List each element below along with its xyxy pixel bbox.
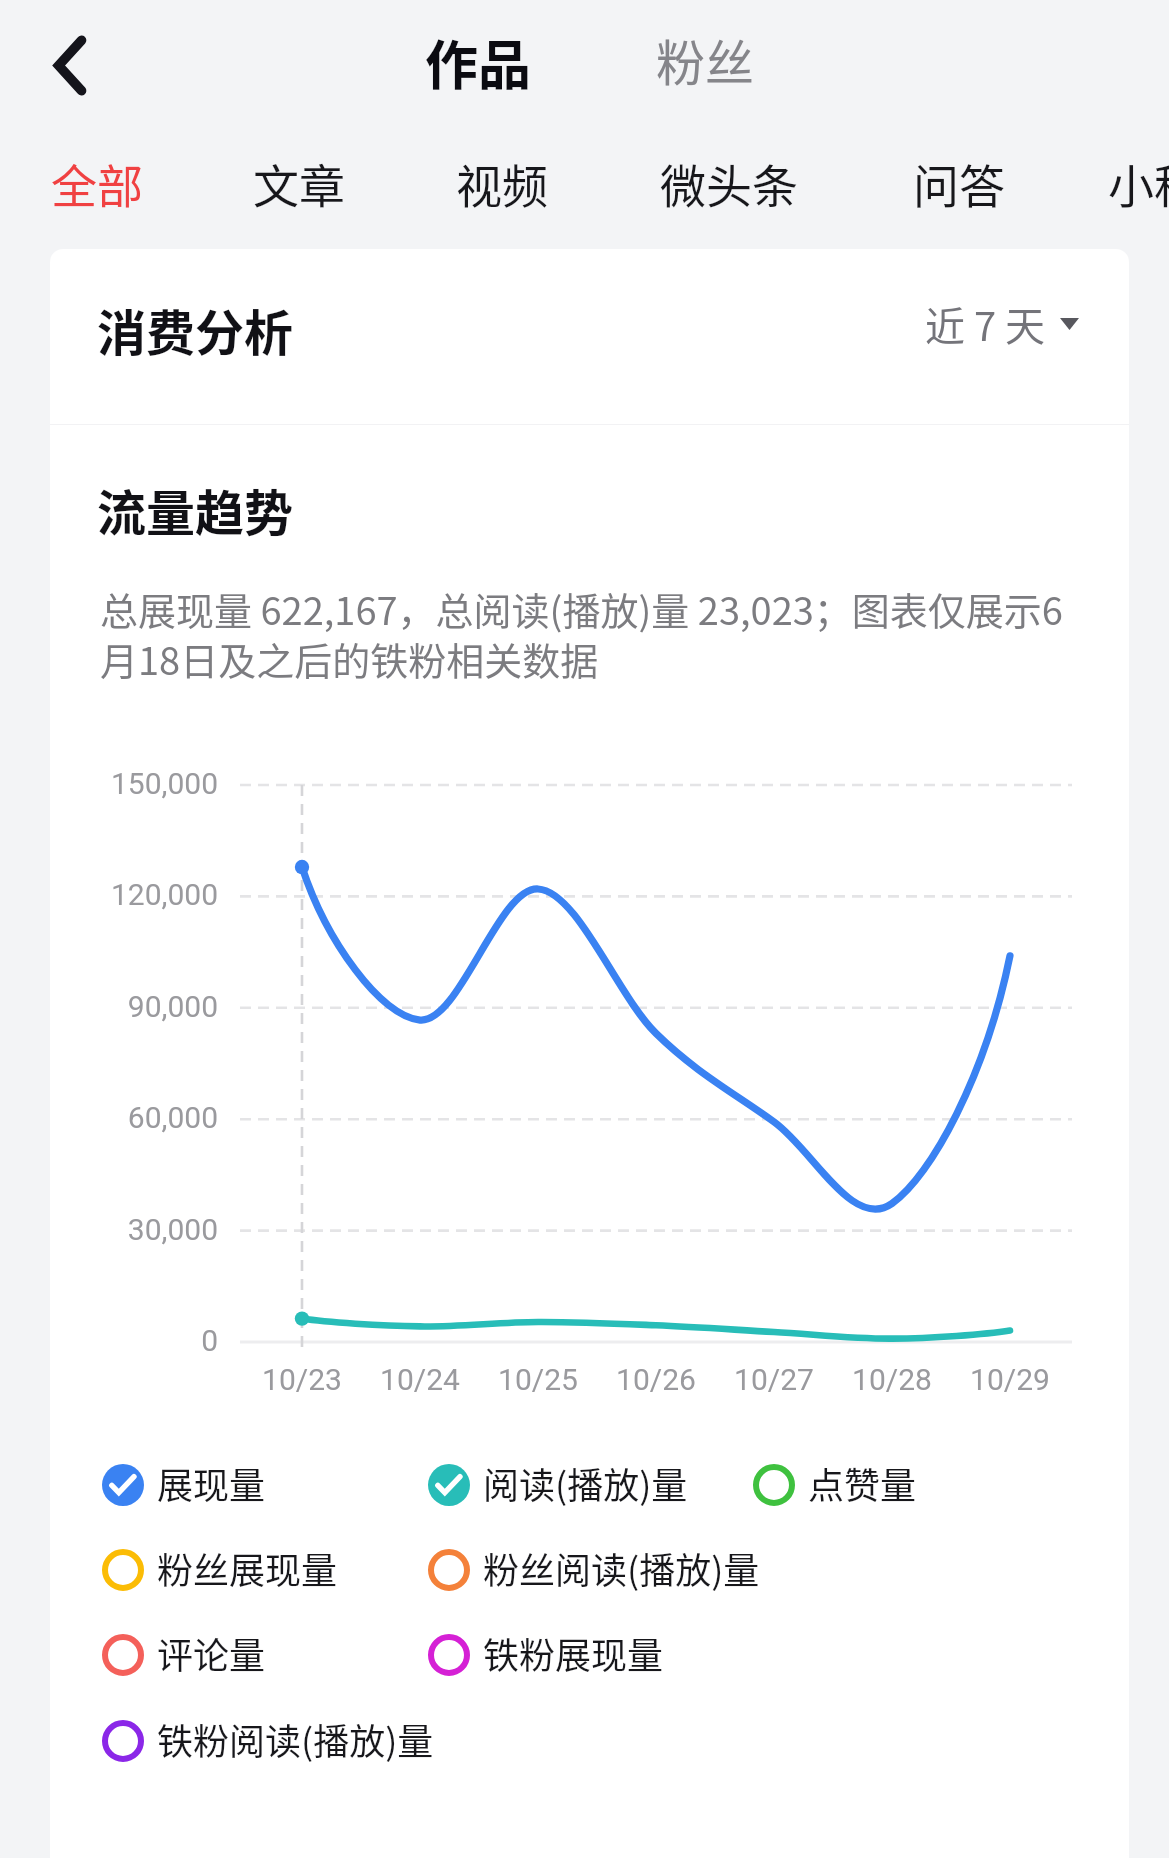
button[interactable]: 小程序 [1108, 150, 1169, 210]
staticText: 问答 [913, 150, 1005, 210]
button[interactable]: 粉丝展现量 [96, 1543, 338, 1597]
button[interactable]: 作品 [425, 24, 531, 101]
button[interactable]: 全部 [51, 150, 143, 210]
staticText: 展现量 [157, 1457, 266, 1509]
button[interactable]: 微头条 [660, 150, 798, 210]
staticText: 10/25 [478, 1362, 598, 1397]
staticText: 铁粉阅读(播放)量 [157, 1713, 434, 1765]
staticText: 10/28 [832, 1362, 952, 1397]
button[interactable]: 近 7 天 [925, 295, 1079, 353]
button[interactable]: 铁粉展现量 [422, 1628, 664, 1682]
staticText: 10/29 [950, 1362, 1070, 1397]
staticText: 粉丝 [656, 24, 755, 95]
staticText: 粉丝阅读(播放)量 [483, 1542, 760, 1594]
staticText: 10/27 [714, 1362, 834, 1397]
staticText: 作品 [425, 24, 531, 101]
staticText: 10/26 [596, 1362, 716, 1397]
staticText: 阅读(播放)量 [483, 1457, 688, 1509]
staticText: 120,000 [58, 877, 218, 912]
staticText: 近 7 天 [925, 295, 1046, 353]
staticText: 总展现量 622,167，总阅读(播放)量 23,023；图表仅展示6月18日及… [100, 581, 1063, 686]
button[interactable]: 阅读(播放)量 [422, 1458, 688, 1512]
staticText: 30,000 [58, 1212, 218, 1247]
staticText: 全部 [51, 150, 143, 210]
button[interactable]: 粉丝阅读(播放)量 [422, 1543, 760, 1597]
staticText: 粉丝展现量 [157, 1542, 338, 1594]
button[interactable]: 点赞量 [747, 1458, 917, 1512]
staticText: 150,000 [58, 766, 218, 801]
staticText: 评论量 [157, 1627, 266, 1679]
staticText: 60,000 [58, 1100, 218, 1135]
staticText: 90,000 [58, 989, 218, 1024]
button[interactable]: 视频 [456, 150, 548, 210]
staticText: 点赞量 [808, 1457, 917, 1509]
button[interactable]: 铁粉阅读(播放)量 [96, 1714, 434, 1768]
staticText: 流量趋势 [97, 474, 294, 545]
staticText: 视频 [456, 150, 548, 210]
button[interactable]: 问答 [913, 150, 1005, 210]
button[interactable]: 评论量 [96, 1628, 266, 1682]
button[interactable]: 展现量 [96, 1458, 266, 1512]
button[interactable]: Back [20, 10, 120, 120]
staticText: 铁粉展现量 [483, 1627, 664, 1679]
staticText: 10/23 [242, 1362, 362, 1397]
button[interactable]: 文章 [253, 150, 345, 210]
staticText: 10/24 [360, 1362, 480, 1397]
button[interactable]: 粉丝 [656, 24, 755, 95]
button[interactable]: 消费分析 [97, 294, 294, 365]
staticText: 小程序 [1108, 150, 1169, 210]
staticText: 0 [58, 1323, 218, 1358]
staticText: 消费分析 [97, 294, 294, 365]
staticText: 微头条 [660, 150, 798, 210]
staticText: 文章 [253, 150, 345, 210]
